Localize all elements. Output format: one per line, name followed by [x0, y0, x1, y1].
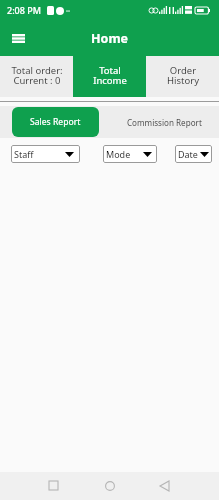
staticText: Total order: Current : 0 — [11, 64, 63, 87]
button[interactable]: Staff — [11, 145, 80, 163]
button[interactable]: Total order: Current : 0 — [0, 56, 73, 97]
staticText: Order History — [167, 64, 199, 87]
button[interactable]: Open navigation menu — [7, 27, 29, 49]
button[interactable]: Recent apps — [41, 473, 66, 498]
staticText: Staff — [14, 148, 34, 160]
button[interactable]: Total Income — [73, 56, 146, 97]
staticText: Home — [91, 30, 129, 47]
button[interactable]: Sales Report — [12, 107, 99, 137]
button[interactable]: Order History — [146, 56, 219, 97]
button[interactable]: Home — [97, 473, 122, 498]
button[interactable]: Date — [175, 145, 212, 163]
button[interactable]: Mode — [103, 145, 157, 163]
staticText: Mode — [106, 148, 131, 160]
staticText: 2:08 PM — [7, 4, 41, 16]
staticText: Commission Report — [127, 117, 202, 128]
button[interactable]: Commission Report — [109, 107, 219, 137]
staticText: Total Income — [93, 64, 127, 87]
staticText: Date — [178, 148, 198, 160]
button[interactable]: Back — [152, 473, 177, 498]
staticText: Sales Report — [30, 116, 81, 128]
